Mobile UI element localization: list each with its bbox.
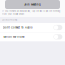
staticText: Join Meeting	[24, 3, 41, 6]
button[interactable]: Turn Off My Video	[0, 32, 65, 41]
staticText: Don't Connect To Audio	[3, 26, 33, 29]
staticText: from your mobile device.	[2, 13, 25, 15]
staticText: Turn Off My Video	[3, 35, 25, 38]
staticText: JOIN OPTIONS	[2, 19, 17, 21]
button[interactable]: Don't Connect To Audio	[0, 23, 65, 32]
staticText: If you received an invitation link, tap …	[2, 10, 60, 12]
